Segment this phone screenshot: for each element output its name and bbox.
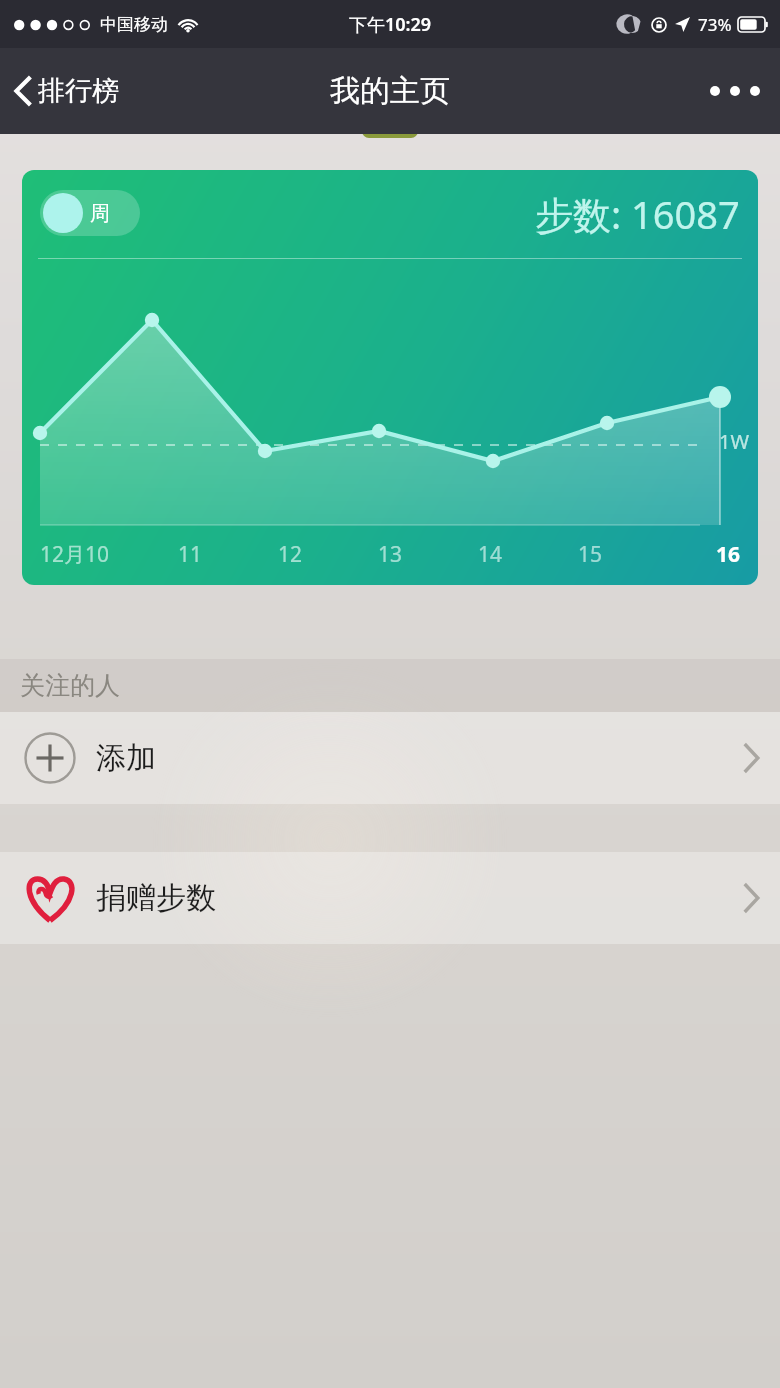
staticText: 13 <box>340 540 440 569</box>
staticText: 1W <box>719 428 750 455</box>
button[interactable]: 周 <box>22 170 758 585</box>
button[interactable]: 添加 <box>0 712 780 804</box>
staticText: 12月10 <box>40 540 140 569</box>
staticText: 14 <box>440 540 540 569</box>
staticText: 步数: 16087 <box>535 188 740 240</box>
button[interactable]: More options <box>690 64 780 118</box>
button[interactable]: 排行榜 <box>0 62 137 120</box>
staticText: 捐赠步数 <box>96 879 216 917</box>
staticText: 下午10:29 <box>349 12 432 37</box>
staticText: 关注的人 <box>20 670 120 701</box>
button[interactable]: 捐赠步数 <box>0 852 780 944</box>
staticText: 中国移动 <box>100 14 168 35</box>
staticText: 周 <box>90 201 110 226</box>
staticText: 我的主页 <box>330 72 450 110</box>
staticText: 排行榜 <box>38 74 119 108</box>
button[interactable]: 周 <box>40 190 140 236</box>
staticText: 73% <box>698 13 732 36</box>
staticText: 添加 <box>96 739 156 777</box>
staticText: 12 <box>240 540 340 569</box>
staticText: 15 <box>540 540 640 569</box>
staticText: 11 <box>140 540 240 569</box>
staticText: 16 <box>640 540 740 569</box>
